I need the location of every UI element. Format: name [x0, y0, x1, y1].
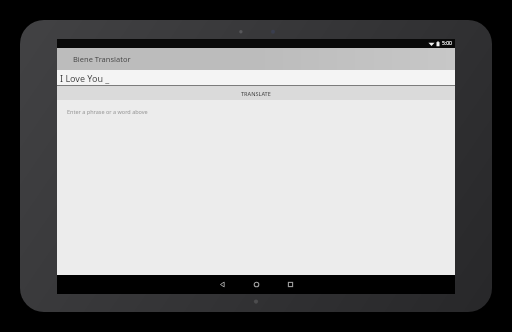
staticText: I Love You _: [60, 72, 110, 84]
staticText: 5:00: [442, 40, 452, 47]
button[interactable]: Recent apps: [273, 275, 307, 294]
button[interactable]: TRANSLATE: [57, 86, 455, 100]
staticText: Biene Translator: [73, 54, 131, 64]
staticText: Enter a phrase or a word above: [67, 108, 148, 115]
button[interactable]: I Love You _: [57, 70, 455, 86]
staticText: TRANSLATE: [241, 90, 271, 97]
button[interactable]: Home: [239, 275, 273, 294]
button[interactable]: Back: [205, 275, 239, 294]
